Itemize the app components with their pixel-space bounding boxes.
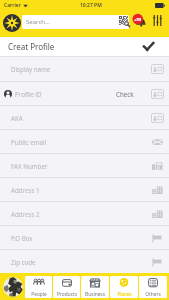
button[interactable]: Others	[139, 276, 167, 298]
button[interactable]: Choose Address 2	[151, 209, 164, 219]
staticText: Public email	[11, 138, 47, 146]
button[interactable]: Choose Public email	[151, 137, 164, 147]
button[interactable]: Products	[53, 276, 80, 298]
staticText: Address 2	[11, 210, 40, 218]
staticText: Profile iD	[15, 90, 42, 98]
staticText: Business	[85, 291, 105, 298]
button[interactable]: Your profile photo	[3, 277, 23, 297]
staticText: Creat Profile	[8, 41, 55, 52]
button[interactable]: AKA	[0, 106, 169, 129]
button[interactable]: Places	[110, 276, 138, 298]
button[interactable]: Search...	[22, 15, 129, 29]
button[interactable]: Address 2	[0, 202, 169, 225]
staticText: Check	[116, 90, 134, 98]
button[interactable]: Display name	[0, 57, 169, 81]
button[interactable]: P.O Box	[0, 226, 169, 249]
button[interactable]: Public email	[0, 130, 169, 153]
staticText: People	[31, 291, 47, 298]
staticText: FAX Number	[11, 162, 48, 170]
button[interactable]: Choose Address 1	[151, 185, 164, 195]
staticText: Zip code	[11, 258, 36, 266]
button[interactable]: Choose Profile iD	[151, 89, 164, 99]
staticText: +99	[134, 17, 142, 23]
staticText: Others	[145, 291, 161, 298]
button[interactable]: Choose Zip code	[151, 257, 164, 267]
staticText: 10:27 PM	[80, 2, 102, 9]
staticText: Address 1	[11, 186, 40, 194]
button[interactable]: Zip code	[0, 250, 169, 273]
staticText: AKA	[11, 114, 23, 122]
staticText: Carrier	[4, 2, 21, 9]
button[interactable]: Address 1	[0, 178, 169, 201]
button[interactable]: Choose FAX Number	[151, 161, 164, 171]
button[interactable]: Scan QR code	[119, 16, 130, 27]
button[interactable]: Business	[81, 276, 109, 298]
staticText: Products	[57, 291, 77, 298]
button[interactable]: People	[25, 276, 52, 298]
button[interactable]: Filters	[150, 13, 165, 28]
button[interactable]: Save profile	[142, 40, 155, 53]
staticText: Display name	[11, 65, 51, 73]
button[interactable]: Notifications	[132, 12, 146, 26]
button[interactable]: Profile iD	[0, 82, 169, 105]
staticText: Search...	[26, 18, 50, 26]
button[interactable]: Choose P.O Box	[151, 233, 164, 243]
button[interactable]: Choose Display name	[151, 64, 164, 74]
button[interactable]: Choose AKA	[151, 113, 164, 123]
button[interactable]: FAX Number	[0, 154, 169, 177]
staticText: Places	[117, 291, 132, 298]
button[interactable]: App logo	[3, 14, 21, 32]
staticText: P.O Box	[11, 234, 33, 242]
